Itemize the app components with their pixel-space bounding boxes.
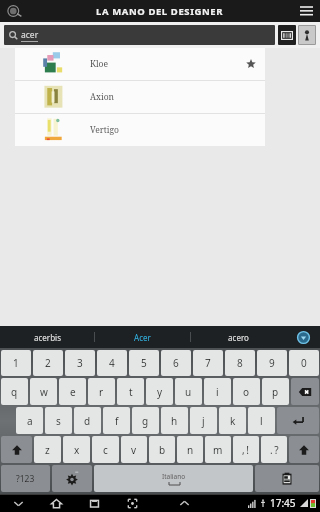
staticText: 2: [45, 356, 51, 370]
staticText: s: [56, 414, 61, 428]
button[interactable]: o: [233, 378, 260, 405]
staticText: j: [202, 414, 205, 428]
button[interactable]: t: [117, 378, 144, 405]
button[interactable]: ?123: [1, 465, 50, 492]
button[interactable]: r: [88, 378, 115, 405]
staticText: w: [40, 385, 48, 399]
button[interactable]: , !: [233, 436, 259, 463]
staticText: Italiano: [162, 472, 186, 481]
button[interactable]: 5: [129, 350, 159, 376]
button[interactable]: acer: [4, 25, 275, 45]
button[interactable]: Home: [48, 495, 64, 511]
staticText: m: [213, 443, 223, 457]
button[interactable]: 3: [65, 350, 95, 376]
staticText: t: [129, 385, 133, 399]
button[interactable]: Voice search: [298, 25, 316, 45]
button[interactable]: Kloe: [15, 48, 265, 80]
staticText: acero: [228, 332, 249, 343]
staticText: 3: [77, 356, 83, 370]
staticText: Axion: [90, 91, 115, 103]
button[interactable]: l: [248, 407, 275, 434]
button[interactable]: Space: [94, 465, 253, 492]
button[interactable]: h: [161, 407, 188, 434]
button[interactable]: Shift: [289, 436, 319, 463]
staticText: k: [230, 414, 236, 428]
button[interactable]: z: [34, 436, 61, 463]
button[interactable]: i: [204, 378, 231, 405]
button[interactable]: Settings: [52, 465, 92, 492]
button[interactable]: Recents: [86, 495, 102, 511]
staticText: Vertigo: [90, 124, 119, 136]
staticText: 9: [269, 356, 275, 370]
staticText: Acer: [134, 332, 151, 343]
staticText: q: [11, 385, 18, 399]
staticText: Kloe: [90, 58, 109, 70]
button[interactable]: k: [219, 407, 246, 434]
staticText: h: [171, 414, 178, 428]
button[interactable]: u: [175, 378, 202, 405]
button[interactable]: c: [92, 436, 119, 463]
button[interactable]: q: [1, 378, 28, 405]
button[interactable]: y: [146, 378, 173, 405]
button[interactable]: 0: [289, 350, 319, 376]
button[interactable]: Expand suggestions: [286, 326, 320, 348]
button[interactable]: w: [30, 378, 57, 405]
button[interactable]: 2: [33, 350, 63, 376]
button[interactable]: 4: [97, 350, 127, 376]
button[interactable]: d: [74, 407, 101, 434]
button[interactable]: 7: [193, 350, 223, 376]
button[interactable]: x: [63, 436, 90, 463]
button[interactable]: Screenshot: [124, 495, 140, 511]
button[interactable]: j: [190, 407, 217, 434]
button[interactable]: App logo: [5, 2, 23, 20]
staticText: acerbis: [34, 332, 61, 343]
staticText: , !: [242, 443, 250, 457]
staticText: g: [142, 414, 149, 428]
staticText: c: [103, 443, 108, 457]
button[interactable]: 9: [257, 350, 287, 376]
button[interactable]: Expand: [176, 495, 192, 511]
staticText: 0: [301, 356, 307, 370]
button[interactable]: Vertigo: [15, 114, 265, 146]
button[interactable]: e: [59, 378, 86, 405]
button[interactable]: Clipboard: [255, 465, 319, 492]
button[interactable]: Menu: [298, 3, 314, 19]
staticText: acer: [21, 29, 39, 41]
staticText: a: [27, 414, 33, 428]
button[interactable]: g: [132, 407, 159, 434]
button[interactable]: Enter: [277, 407, 319, 434]
staticText: 6: [173, 356, 179, 370]
button[interactable]: 8: [225, 350, 255, 376]
button[interactable]: Scan barcode: [278, 25, 296, 45]
staticText: 7: [205, 356, 211, 370]
button[interactable]: p: [262, 378, 289, 405]
button[interactable]: acero: [191, 326, 286, 348]
button[interactable]: 1: [1, 350, 31, 376]
button[interactable]: s: [45, 407, 72, 434]
staticText: i: [216, 385, 219, 399]
button[interactable]: 6: [161, 350, 191, 376]
button[interactable]: n: [177, 436, 203, 463]
button[interactable]: Axion: [15, 81, 265, 113]
staticText: l: [260, 414, 263, 428]
button[interactable]: v: [121, 436, 147, 463]
staticText: z: [45, 443, 50, 457]
staticText: LA MANO DEL DESIGNER: [96, 5, 224, 18]
staticText: 5: [141, 356, 147, 370]
staticText: u: [185, 385, 192, 399]
button[interactable]: Backspace: [291, 378, 319, 405]
staticText: x: [74, 443, 80, 457]
button[interactable]: . ?: [261, 436, 287, 463]
staticText: r: [99, 385, 104, 399]
button[interactable]: Acer: [95, 326, 190, 348]
button[interactable]: f: [103, 407, 130, 434]
button[interactable]: b: [149, 436, 175, 463]
button[interactable]: Shift: [1, 436, 32, 463]
staticText: f: [115, 414, 119, 428]
button[interactable]: Hide keyboard: [10, 495, 26, 511]
button[interactable]: a: [16, 407, 43, 434]
button[interactable]: m: [205, 436, 231, 463]
button[interactable]: acerbis: [0, 326, 94, 348]
button[interactable]: Favourite: [243, 56, 259, 72]
staticText: n: [187, 443, 194, 457]
